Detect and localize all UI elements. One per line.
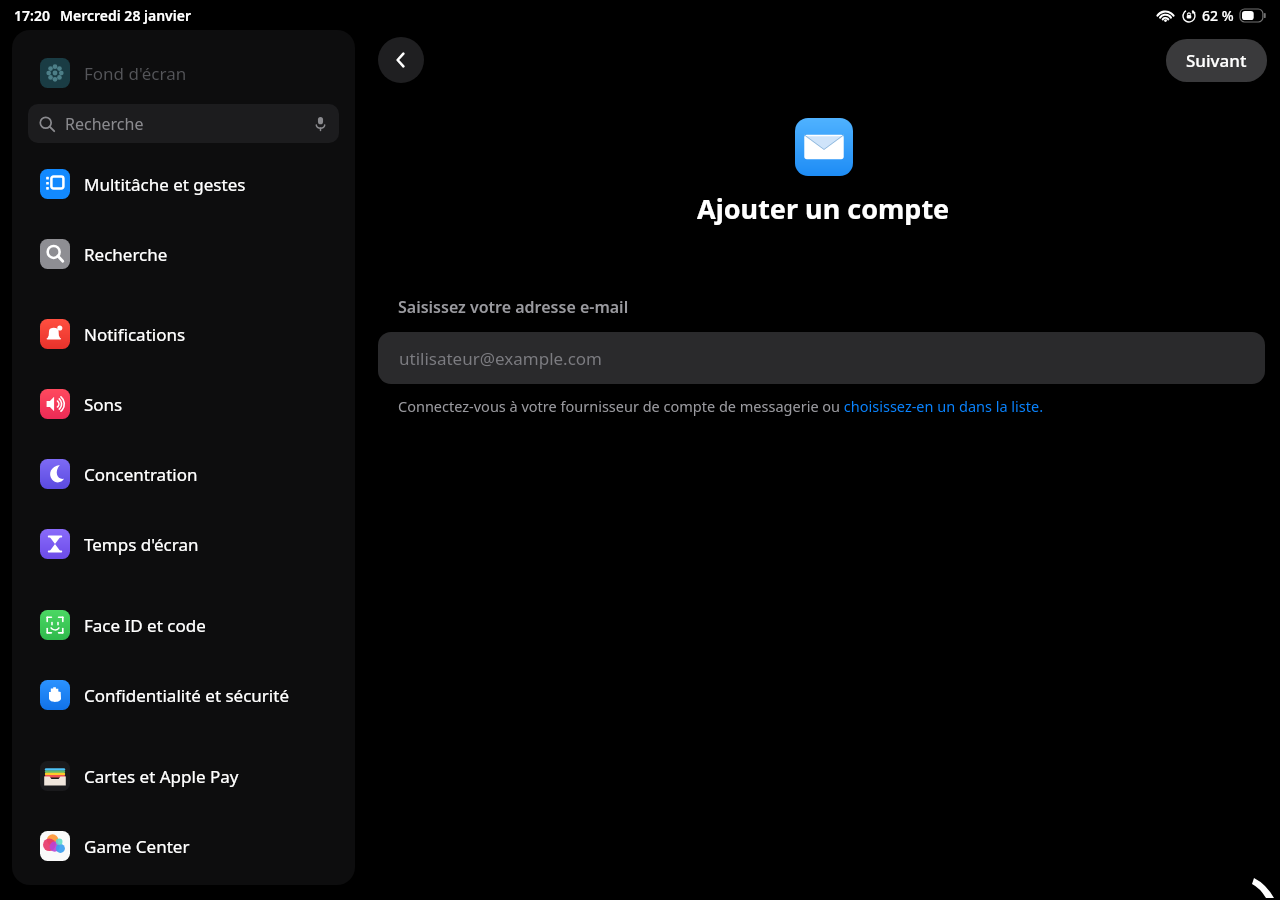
staticText: Recherche: [65, 113, 144, 135]
staticText: Notifications: [84, 323, 186, 346]
staticText: Confidentialité et sécurité: [84, 684, 289, 707]
staticText: Temps d'écran: [84, 533, 199, 556]
staticText: 62 %: [1202, 6, 1234, 25]
button[interactable]: Connectez-vous à votre fournisseur de co…: [398, 396, 1044, 416]
staticText: Cartes et Apple Pay: [84, 765, 239, 788]
staticText: Face ID et code: [84, 614, 206, 637]
staticText: Fond d'écran: [84, 62, 187, 85]
staticText: Mercredi 28 janvier: [60, 6, 191, 25]
button[interactable]: Temps d'écran: [28, 522, 339, 566]
button[interactable]: Suivant: [1166, 39, 1267, 82]
staticText: Concentration: [84, 463, 198, 486]
staticText: Recherche: [84, 243, 168, 266]
staticText: Connectez-vous à votre fournisseur de co…: [398, 396, 1044, 416]
button[interactable]: Concentration: [28, 452, 339, 496]
button[interactable]: utilisateur@example.com: [378, 332, 1265, 384]
button[interactable]: Fond d'écran: [28, 51, 339, 95]
button[interactable]: Sons: [28, 382, 339, 426]
button[interactable]: Recherche: [28, 104, 339, 143]
staticText: utilisateur@example.com: [399, 347, 603, 370]
staticText: Ajouter un compte: [697, 190, 950, 227]
button[interactable]: Notifications: [28, 312, 339, 356]
button[interactable]: Confidentialité et sécurité: [28, 673, 339, 717]
button[interactable]: Face ID et code: [28, 603, 339, 647]
button[interactable]: Game Center: [28, 824, 339, 868]
button[interactable]: Cartes et Apple Pay: [28, 754, 339, 798]
staticText: Sons: [84, 393, 123, 416]
staticText: 17:20: [14, 6, 50, 25]
other: Dictée: [313, 116, 328, 131]
button[interactable]: Retour: [378, 37, 424, 83]
staticText: Game Center: [84, 835, 190, 858]
button[interactable]: Recherche: [28, 232, 339, 276]
staticText: Suivant: [1186, 49, 1247, 72]
staticText: Saisissez votre adresse e-mail: [398, 296, 629, 318]
button[interactable]: Multitâche et gestes: [28, 162, 339, 206]
staticText: Multitâche et gestes: [84, 173, 246, 196]
